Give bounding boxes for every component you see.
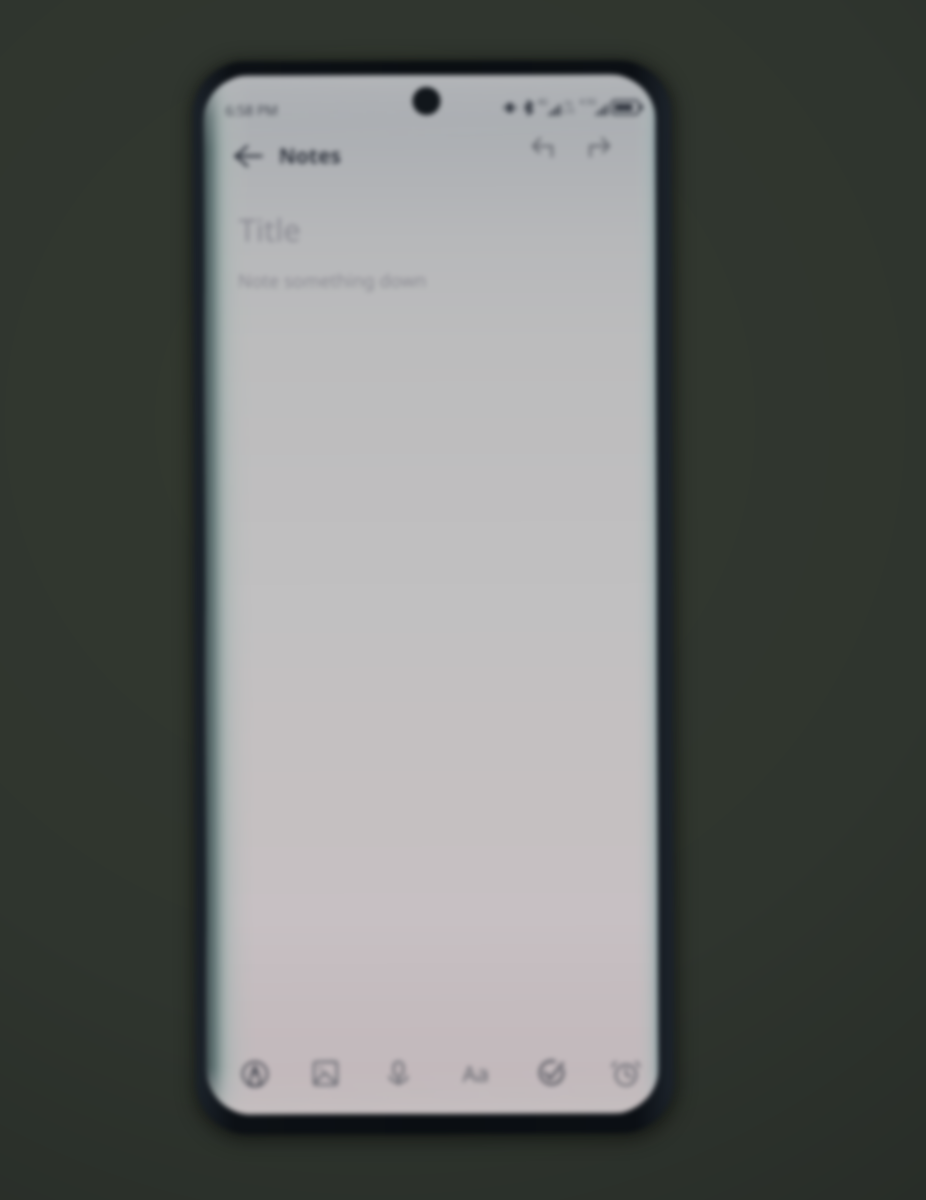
button[interactable]: Checklist — [527, 1049, 576, 1097]
button[interactable]: Undo — [523, 126, 564, 166]
button[interactable]: Reminder — [601, 1048, 650, 1096]
button[interactable]: Voice input — [374, 1049, 423, 1097]
staticText: 4.5G — [579, 95, 597, 107]
button[interactable]: Back — [229, 137, 266, 174]
staticText: 4G — [537, 96, 548, 107]
staticText: Title — [239, 208, 301, 251]
button[interactable]: Insert image — [301, 1049, 350, 1097]
button[interactable]: Draw — [230, 1049, 279, 1098]
staticText: Aa — [462, 1058, 489, 1088]
button[interactable]: Redo — [578, 125, 619, 165]
staticText: Note something down — [238, 268, 427, 294]
staticText: Vo — [564, 99, 573, 109]
staticText: Notes — [279, 141, 342, 170]
button[interactable]: Text format — [451, 1049, 500, 1097]
staticText: 6:58 PM — [225, 100, 278, 120]
staticText: LTE — [563, 107, 575, 117]
